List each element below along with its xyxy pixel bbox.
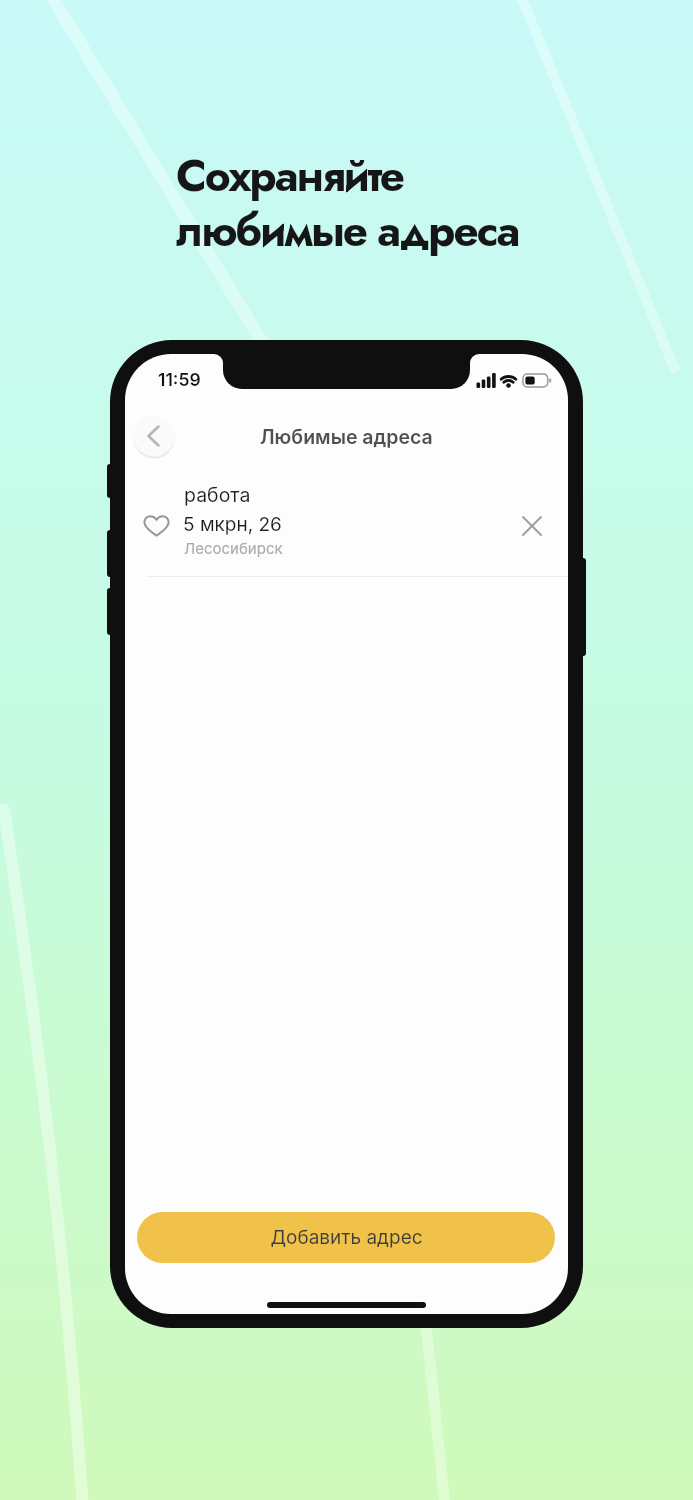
- staticText: Лесосибирск: [184, 539, 283, 557]
- button[interactable]: [133, 415, 175, 457]
- button[interactable]: работа: [125, 480, 568, 578]
- staticText: Любимые адреса: [260, 425, 433, 449]
- staticText: любимые адреса: [176, 199, 519, 263]
- staticText: Добавить адрес: [270, 1226, 423, 1249]
- button[interactable]: Добавить адрес: [137, 1212, 555, 1263]
- staticText: 11:59: [158, 369, 201, 390]
- staticText: 5 мкрн, 26: [183, 513, 282, 536]
- staticText: работа: [184, 483, 251, 507]
- staticText: Сохраняйте: [176, 144, 404, 208]
